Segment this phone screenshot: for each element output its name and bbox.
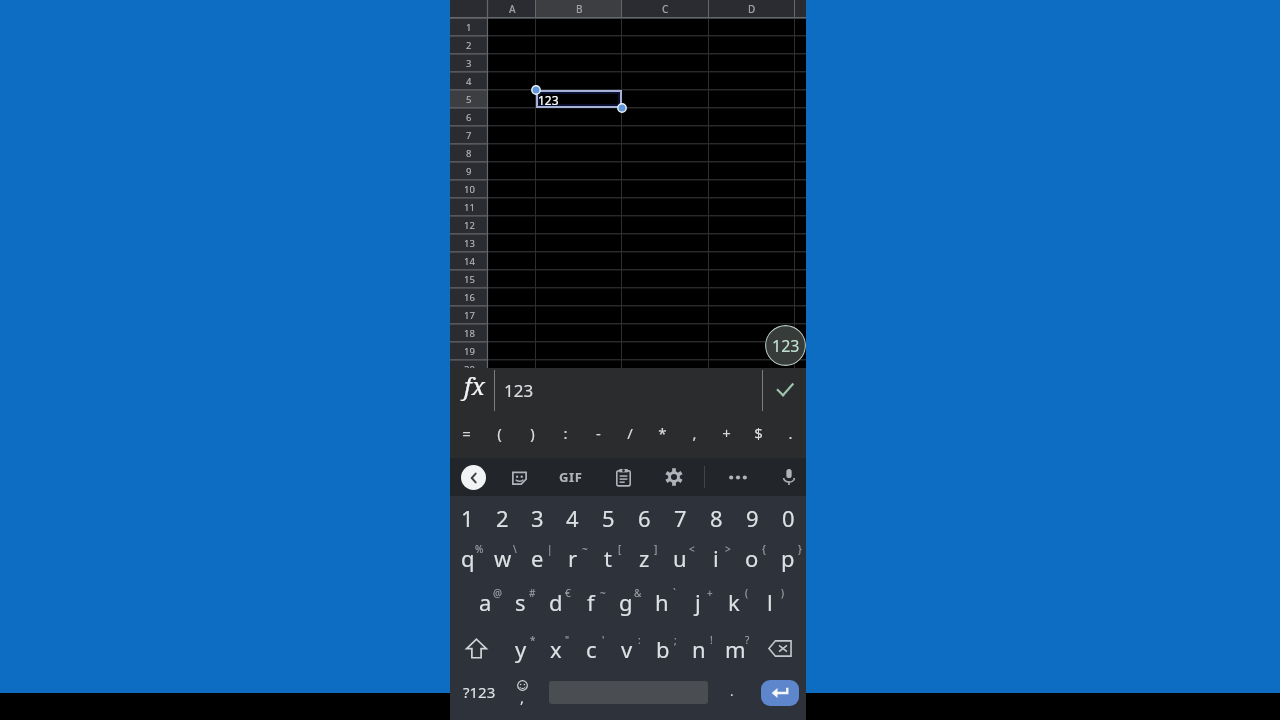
button[interactable]: u: [662, 536, 698, 579]
staticText: y: [515, 634, 527, 664]
button[interactable]: ,: [678, 410, 710, 456]
button[interactable]: p: [770, 536, 806, 579]
button[interactable]: B: [536, 0, 622, 18]
button[interactable]: 8: [450, 144, 488, 162]
button[interactable]: Settings: [657, 458, 691, 496]
button[interactable]: GIF: [557, 458, 585, 496]
button[interactable]: Back: [461, 465, 486, 490]
button[interactable]: 15: [450, 270, 488, 288]
button[interactable]: d: [538, 580, 573, 623]
button[interactable]: 2: [450, 36, 488, 54]
button[interactable]: Stickers: [502, 458, 536, 496]
staticText: j: [695, 587, 701, 617]
button[interactable]: h: [644, 580, 680, 623]
button[interactable]: q: [450, 536, 485, 579]
button[interactable]: .: [774, 410, 806, 456]
button[interactable]: Enter: [761, 680, 799, 706]
staticText: 3: [531, 503, 544, 533]
button[interactable]: 2: [485, 496, 520, 539]
button[interactable]: j: [680, 580, 716, 623]
button[interactable]: +: [710, 410, 742, 456]
button[interactable]: ): [516, 410, 549, 456]
button[interactable]: Clipboard: [606, 458, 640, 496]
button[interactable]: 1: [450, 496, 485, 539]
button[interactable]: 7: [662, 496, 698, 539]
staticText: ?: [745, 633, 750, 647]
button[interactable]: 14: [450, 252, 488, 270]
button[interactable]: 17: [450, 306, 488, 324]
button[interactable]: 3: [520, 496, 555, 539]
button[interactable]: e: [520, 536, 555, 579]
staticText: A: [509, 2, 516, 16]
button[interactable]: A: [488, 0, 536, 18]
staticText: $: [754, 423, 763, 443]
button[interactable]: Insert function: [454, 368, 494, 412]
button[interactable]: Shift: [450, 627, 503, 670]
staticText: *: [530, 633, 536, 647]
button[interactable]: 9: [450, 162, 488, 180]
button[interactable]: b: [645, 627, 681, 670]
button[interactable]: -: [582, 410, 614, 456]
button[interactable]: Emoji: [503, 671, 547, 714]
button[interactable]: m: [717, 627, 753, 670]
button[interactable]: 16: [450, 288, 488, 306]
button[interactable]: 4: [555, 496, 590, 539]
button[interactable]: $: [742, 410, 774, 456]
button[interactable]: 8: [698, 496, 734, 539]
button[interactable]: 6: [450, 108, 488, 126]
button[interactable]: 10: [450, 180, 488, 198]
button[interactable]: 123: [765, 325, 806, 366]
button[interactable]: Accept: [763, 368, 806, 412]
button[interactable]: D: [709, 0, 795, 18]
staticText: 2: [496, 503, 509, 533]
button[interactable]: .: [710, 671, 753, 714]
staticText: C: [662, 2, 669, 16]
button[interactable]: 13: [450, 234, 488, 252]
button[interactable]: 7: [450, 126, 488, 144]
button[interactable]: 3: [450, 54, 488, 72]
button[interactable]: C: [622, 0, 709, 18]
button[interactable]: k: [716, 580, 752, 623]
button[interactable]: /: [614, 410, 646, 456]
button[interactable]: y: [503, 627, 538, 670]
button[interactable]: l: [752, 580, 788, 623]
button[interactable]: o: [734, 536, 770, 579]
button[interactable]: 12: [450, 216, 488, 234]
button[interactable]: 20: [450, 360, 488, 378]
button[interactable]: x: [538, 627, 573, 670]
button[interactable]: s: [503, 580, 538, 623]
staticText: w: [494, 543, 512, 573]
button[interactable]: :: [549, 410, 582, 456]
button[interactable]: c: [573, 627, 609, 670]
button[interactable]: 6: [626, 496, 662, 539]
button[interactable]: Backspace: [753, 627, 806, 670]
button[interactable]: 1: [450, 18, 488, 36]
button[interactable]: n: [681, 627, 717, 670]
button[interactable]: v: [609, 627, 645, 670]
staticText: c: [586, 634, 597, 664]
button[interactable]: =: [450, 410, 483, 456]
button[interactable]: 5: [590, 496, 626, 539]
button[interactable]: Voice input: [772, 458, 806, 496]
button[interactable]: 19: [450, 342, 488, 360]
button[interactable]: 5: [450, 90, 488, 108]
button[interactable]: More options: [721, 458, 755, 496]
button[interactable]: z: [626, 536, 662, 579]
button[interactable]: t: [590, 536, 626, 579]
staticText: 7: [466, 129, 472, 142]
button[interactable]: 9: [734, 496, 770, 539]
button[interactable]: a: [468, 580, 503, 623]
button[interactable]: w: [485, 536, 520, 579]
button[interactable]: i: [698, 536, 734, 579]
button[interactable]: (: [483, 410, 516, 456]
button[interactable]: ?123: [450, 671, 503, 714]
button[interactable]: 11: [450, 198, 488, 216]
button[interactable]: f: [573, 580, 608, 623]
button[interactable]: 0: [770, 496, 806, 539]
button[interactable]: *: [646, 410, 678, 456]
button[interactable]: 18: [450, 324, 488, 342]
button[interactable]: r: [555, 536, 590, 579]
button[interactable]: g: [608, 580, 644, 623]
button[interactable]: 4: [450, 72, 488, 90]
